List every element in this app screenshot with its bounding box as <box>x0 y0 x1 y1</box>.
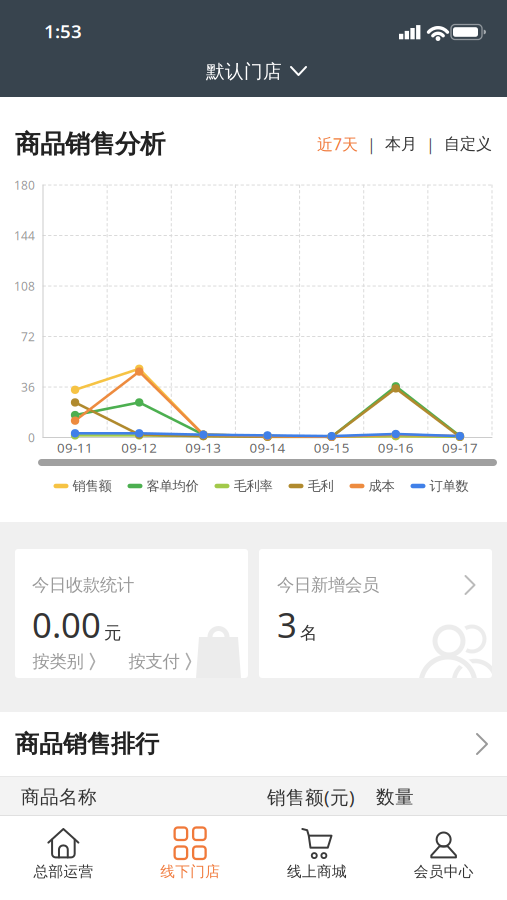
staticText: 本月 <box>385 134 417 154</box>
staticText: 销售额(元) <box>267 785 355 809</box>
staticText: 72 <box>21 328 35 344</box>
staticText: 按类别 <box>32 651 83 672</box>
staticText: 名 <box>300 622 317 643</box>
staticText: 线上商城 <box>287 862 347 880</box>
button[interactable]: 自定义 <box>444 134 492 154</box>
button[interactable]: 今日新增会员 <box>259 549 492 678</box>
button[interactable]: 按类别 <box>32 651 95 672</box>
button[interactable]: 线上商城 <box>253 816 380 900</box>
staticText: 09-14 <box>249 439 285 456</box>
staticText: 按支付 <box>128 651 179 672</box>
button[interactable]: 按支付 <box>128 651 191 672</box>
staticText: 数量 <box>376 785 414 808</box>
staticText: 自定义 <box>444 134 492 154</box>
button[interactable]: 线下门店 <box>127 816 254 900</box>
button[interactable]: 默认门店 <box>206 60 306 83</box>
staticText: 近7天 <box>317 133 358 155</box>
staticText: 默认门店 <box>206 60 282 83</box>
staticText: 元 <box>104 622 121 643</box>
staticText: 成本 <box>368 478 394 494</box>
staticText: 108 <box>14 278 35 294</box>
staticText: 09-16 <box>378 439 414 456</box>
staticText: 会员中心 <box>414 862 474 880</box>
staticText: 180 <box>14 177 35 193</box>
staticText: 09-11 <box>57 439 93 456</box>
button[interactable]: 商品销售排行 <box>0 712 507 776</box>
staticText: 毛利 <box>307 478 333 494</box>
staticText: 商品销售分析 <box>15 128 165 159</box>
staticText: 09-13 <box>185 439 221 456</box>
staticText: 3 <box>277 601 297 647</box>
staticText: 144 <box>14 227 35 243</box>
staticText: 商品名称 <box>21 785 97 808</box>
button[interactable]: 本月 <box>385 134 417 154</box>
staticText: 09-15 <box>314 439 350 456</box>
staticText: 今日收款统计 <box>32 574 134 596</box>
staticText: 1:53 <box>44 19 82 43</box>
button[interactable]: 会员中心 <box>380 816 507 900</box>
staticText: | <box>426 133 435 155</box>
staticText: 36 <box>21 379 35 395</box>
button[interactable]: 总部运营 <box>0 816 127 900</box>
staticText: 订单数 <box>429 478 468 494</box>
staticText: 销售额 <box>72 478 111 494</box>
staticText: 客单均价 <box>146 478 198 494</box>
staticText: 0.00 <box>32 601 101 647</box>
staticText: 商品销售排行 <box>15 729 159 759</box>
button[interactable]: 近7天 <box>317 133 358 155</box>
staticText: 09-12 <box>121 439 157 456</box>
staticText: 今日新增会员 <box>277 574 379 596</box>
staticText: 09-17 <box>442 439 478 456</box>
staticText: 毛利率 <box>233 478 272 494</box>
staticText: 0 <box>28 429 35 445</box>
staticText: | <box>367 133 376 155</box>
button[interactable]: 今日收款统计 <box>15 549 248 678</box>
staticText: 总部运营 <box>33 862 93 880</box>
staticText: 线下门店 <box>160 862 220 880</box>
